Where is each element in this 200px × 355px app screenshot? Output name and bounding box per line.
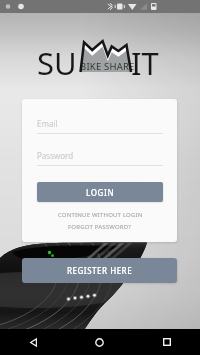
button[interactable]: Recents: [133, 329, 200, 355]
staticText: Password: [37, 150, 74, 161]
button[interactable]: Back: [0, 329, 66, 355]
button[interactable]: REGISTER HERE: [22, 258, 177, 283]
staticText: LOGIN: [86, 187, 115, 198]
button[interactable]: FORGOT PASSWORD?: [37, 223, 163, 231]
button[interactable]: Email: [37, 118, 163, 134]
button[interactable]: Password: [37, 150, 163, 166]
staticText: SU: [37, 42, 77, 84]
staticText: FORGOT PASSWORD?: [68, 223, 132, 231]
button[interactable]: LOGIN: [37, 182, 163, 202]
staticText: REGISTER HERE: [67, 265, 133, 276]
staticText: Email: [37, 118, 58, 129]
button[interactable]: Home: [66, 329, 133, 355]
button[interactable]: CONTINUE WITHOUT LOGIN: [37, 211, 163, 219]
staticText: CONTINUE WITHOUT LOGIN: [58, 211, 143, 219]
staticText: IT: [131, 42, 159, 84]
staticText: BIKE SHARE: [80, 60, 135, 73]
